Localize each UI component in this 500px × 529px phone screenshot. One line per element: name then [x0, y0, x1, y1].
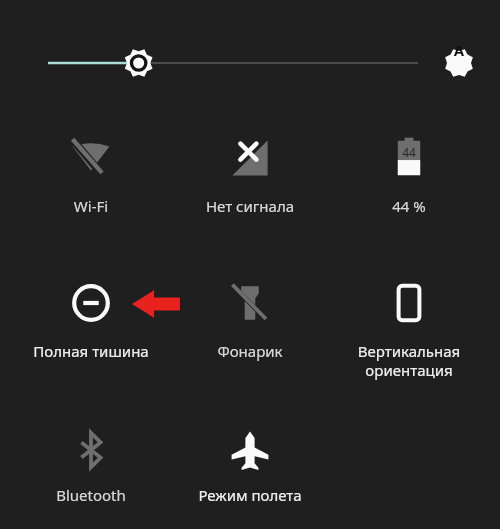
button[interactable]: Brightness	[30, 40, 438, 86]
staticText: Полная тишина	[16, 341, 166, 529]
button[interactable]: Батарея 44 процента	[334, 124, 484, 192]
staticText: Режим полета	[175, 485, 325, 529]
button[interactable]: Вертикальная ориентация	[339, 269, 479, 337]
staticText: Нет сигнала	[175, 196, 325, 529]
button[interactable]: Wi-Fi	[16, 124, 166, 192]
staticText: Bluetooth	[16, 485, 166, 529]
staticText: 44	[389, 144, 429, 170]
staticText: Фонарик	[175, 341, 325, 529]
staticText: A	[436, 40, 482, 86]
button[interactable]: Нет сигнала	[175, 124, 325, 192]
staticText: Wi-Fi	[16, 196, 166, 529]
staticText: Вертикальная ориентация	[339, 341, 479, 529]
button[interactable]: Bluetooth	[16, 416, 166, 484]
button[interactable]: Фонарик	[175, 269, 325, 337]
button[interactable]: Режим полета	[175, 416, 325, 484]
button[interactable]: Auto brightness	[436, 40, 482, 86]
button[interactable]: Полная тишина	[16, 269, 166, 337]
staticText: 44 %	[334, 196, 484, 529]
